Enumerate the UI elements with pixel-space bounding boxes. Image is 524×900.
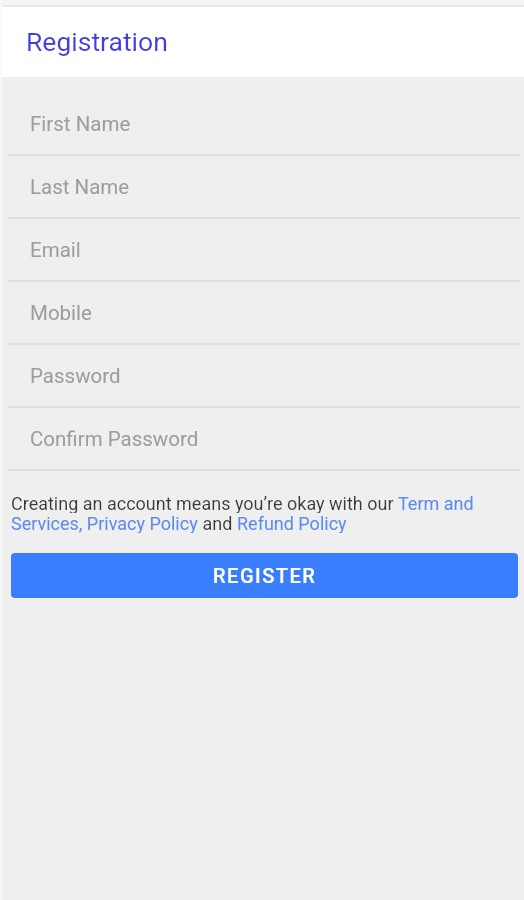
button[interactable]: Term and Services — [11, 513, 198, 533]
staticText: Registration — [26, 26, 168, 57]
staticText: Services, Privacy Policy — [11, 513, 198, 533]
button[interactable]: Email — [0, 219, 524, 282]
staticText: Confirm Password — [30, 427, 199, 451]
button[interactable]: Confirm Password — [0, 408, 524, 471]
button[interactable]: First Name — [0, 93, 524, 156]
staticText: and — [198, 513, 237, 533]
staticText: Refund Policy — [237, 513, 347, 533]
staticText: Password — [30, 364, 121, 388]
staticText: REGISTER — [213, 564, 317, 587]
staticText: Creating an account means you’re okay wi… — [11, 493, 398, 513]
button[interactable]: Term and Services — [398, 493, 474, 513]
button[interactable]: Password — [0, 345, 524, 408]
button[interactable]: REGISTER — [11, 553, 518, 598]
staticText: Last Name — [30, 175, 130, 199]
staticText: Term and — [398, 493, 474, 513]
staticText: Mobile — [30, 301, 92, 325]
button[interactable]: Refund Policy — [237, 513, 347, 533]
staticText: First Name — [30, 112, 131, 136]
staticText: Email — [30, 238, 81, 262]
button[interactable]: Mobile — [0, 282, 524, 345]
button[interactable]: Last Name — [0, 156, 524, 219]
